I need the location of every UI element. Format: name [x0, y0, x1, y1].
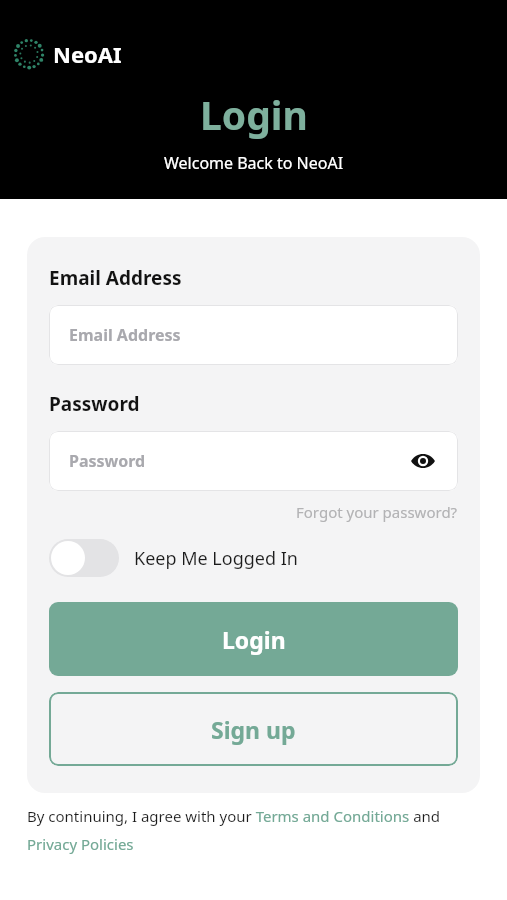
staticText: By continuing, I agree with your Terms a…: [27, 806, 487, 854]
button[interactable]: Password: [49, 431, 458, 491]
button[interactable]: Sign up: [49, 692, 458, 766]
staticText: Email Address: [69, 324, 181, 346]
staticText: Forgot your password?: [296, 502, 458, 522]
staticText: Welcome Back to NeoAI: [164, 152, 344, 174]
staticText: Keep Me Logged In: [134, 546, 298, 571]
staticText: Password: [69, 450, 146, 472]
button[interactable]: Show password: [408, 446, 438, 476]
button[interactable]: Keep Me Logged In: [49, 539, 458, 577]
staticText: Email Address: [49, 265, 182, 291]
staticText: NeoAI: [53, 39, 122, 69]
button[interactable]: Login: [49, 602, 458, 676]
staticText: Login: [222, 624, 286, 655]
staticText: Password: [49, 391, 140, 417]
button[interactable]: Email Address: [49, 305, 458, 365]
staticText: Login: [200, 88, 308, 141]
button[interactable]: Forgot your password?: [296, 502, 458, 522]
staticText: Sign up: [211, 714, 296, 745]
